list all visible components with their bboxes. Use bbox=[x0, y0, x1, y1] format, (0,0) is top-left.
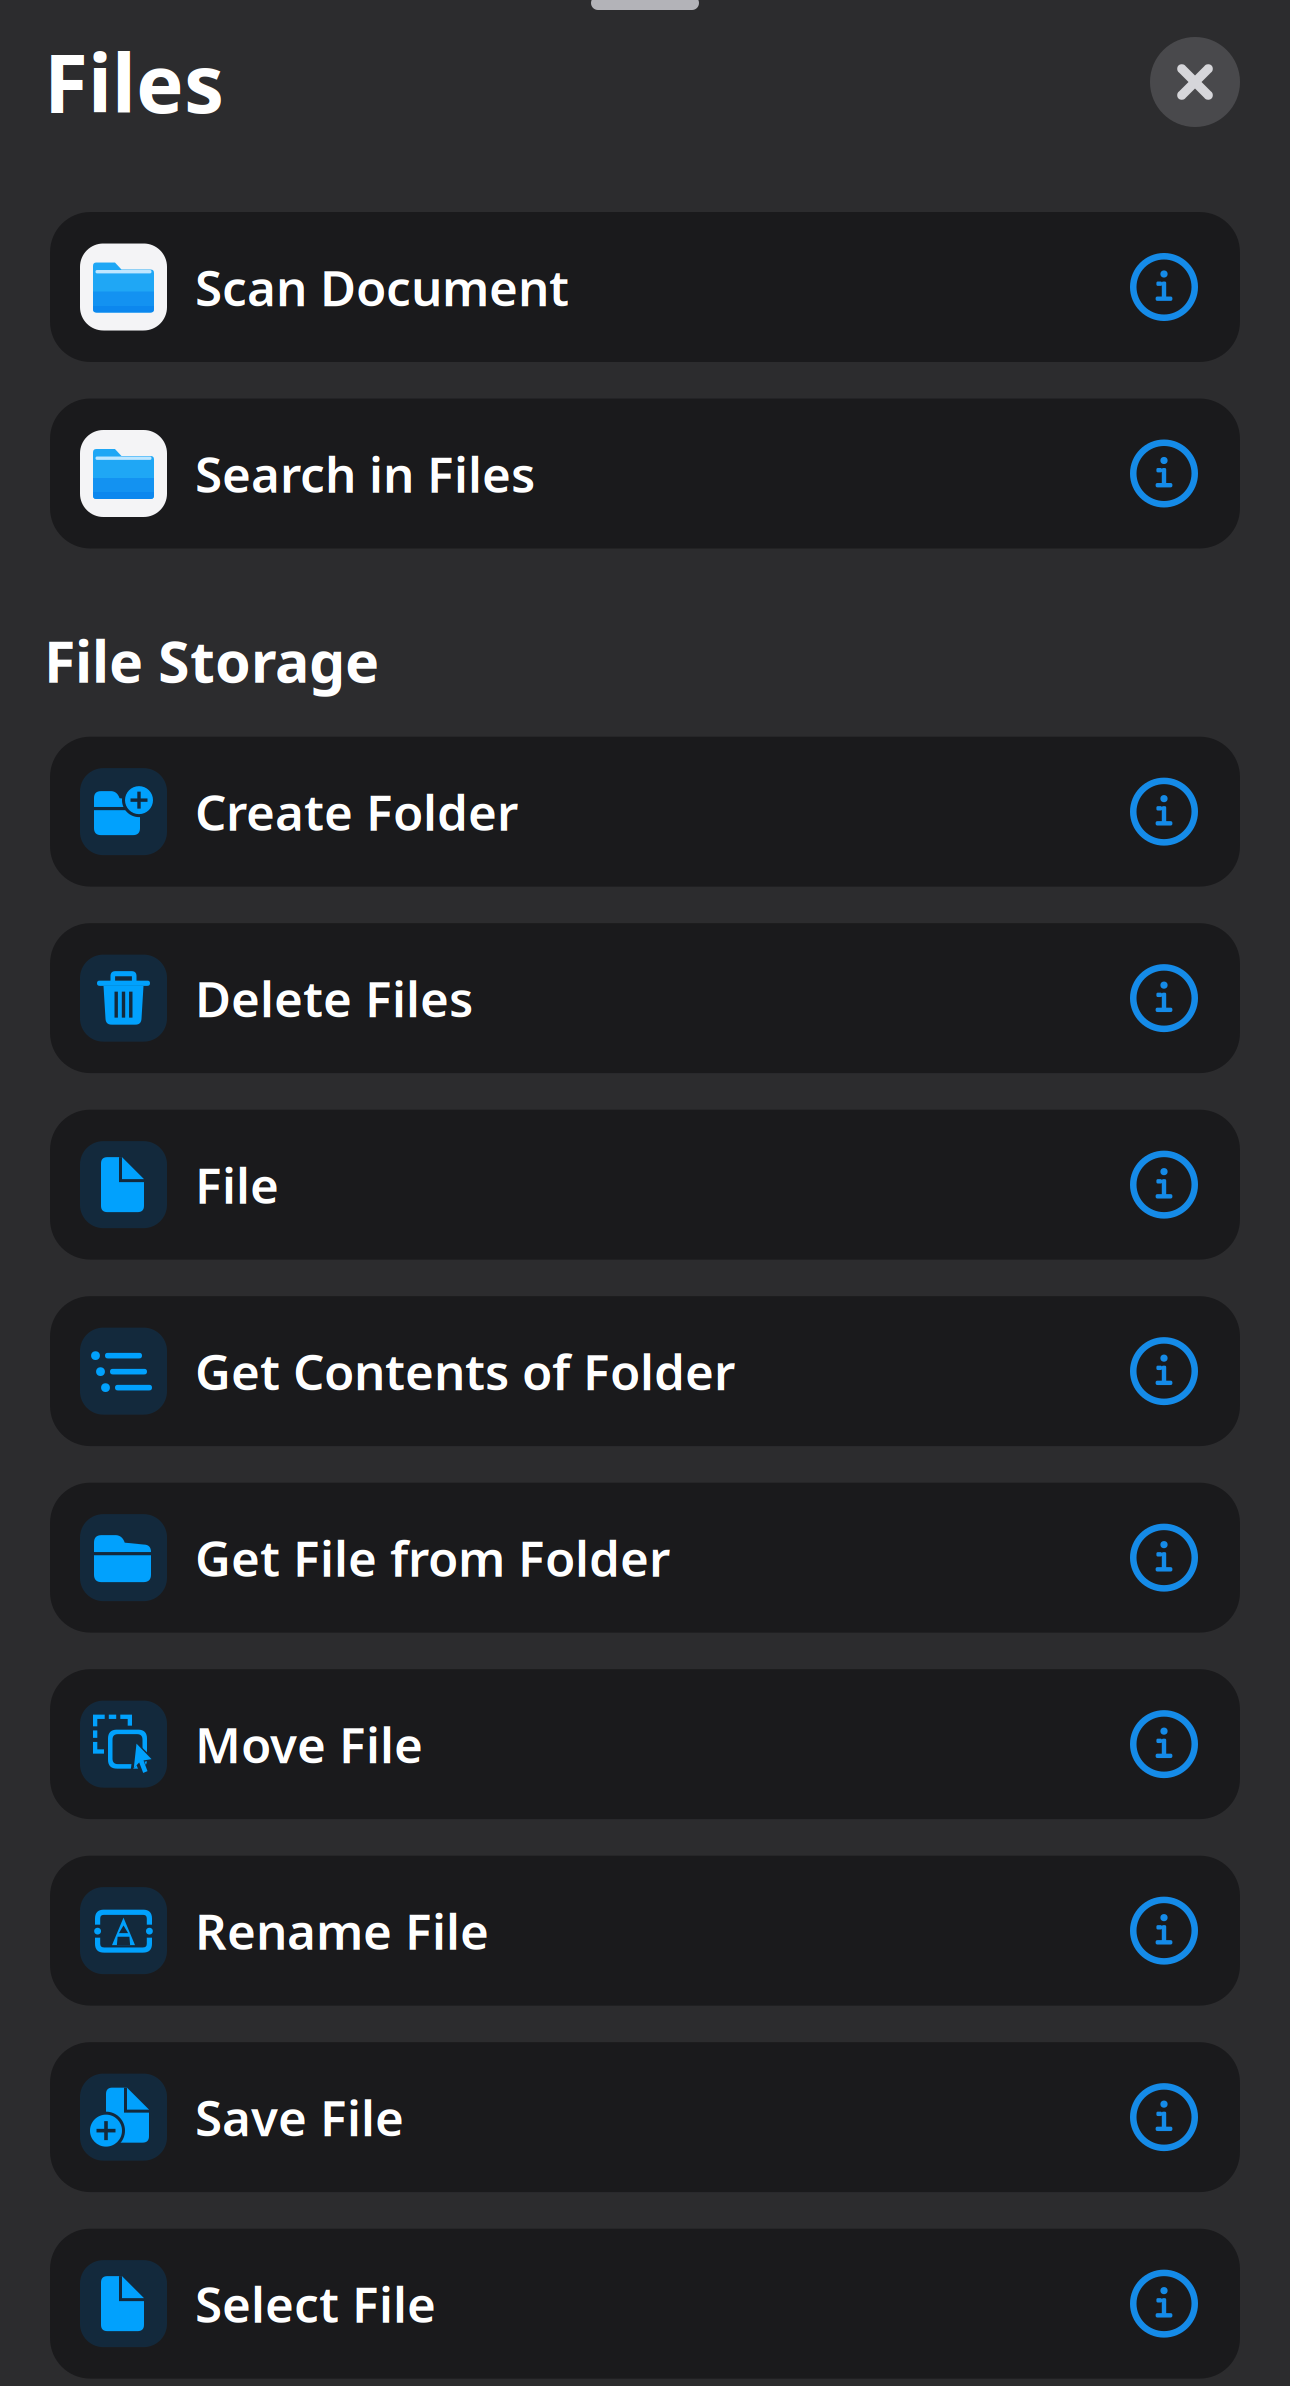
button[interactable]: File bbox=[50, 1110, 1240, 1260]
staticText: Rename File bbox=[195, 1898, 489, 1963]
staticText: Select File bbox=[195, 2271, 436, 2336]
button[interactable]: Rename File bbox=[50, 1856, 1240, 2006]
staticText: Files bbox=[44, 29, 224, 135]
button[interactable]: More info bbox=[1130, 439, 1198, 507]
button[interactable]: More info bbox=[1130, 1524, 1198, 1592]
button[interactable]: Move File bbox=[50, 1669, 1240, 1819]
button[interactable]: Close bbox=[1150, 37, 1240, 127]
staticText: File Storage bbox=[44, 622, 379, 699]
button[interactable]: Create Folder bbox=[50, 737, 1240, 887]
button[interactable]: More info bbox=[1130, 778, 1198, 846]
button[interactable]: More info bbox=[1130, 1337, 1198, 1405]
button[interactable]: Delete Files bbox=[50, 923, 1240, 1073]
staticText: Get Contents of Folder bbox=[195, 1338, 735, 1404]
staticText: Search in Files bbox=[195, 441, 535, 506]
button[interactable]: Scan Document bbox=[50, 212, 1240, 362]
button[interactable]: More info bbox=[1130, 2083, 1198, 2151]
staticText: Save File bbox=[195, 2084, 404, 2150]
button[interactable]: Save File bbox=[50, 2042, 1240, 2192]
staticText: Get File from Folder bbox=[195, 1525, 670, 1590]
staticText: Move File bbox=[195, 1711, 423, 1777]
button[interactable]: Select File bbox=[50, 2229, 1240, 2379]
button[interactable]: Get Contents of Folder bbox=[50, 1296, 1240, 1446]
button[interactable]: More info bbox=[1130, 1897, 1198, 1965]
staticText: Create Folder bbox=[195, 779, 518, 844]
button[interactable]: More info bbox=[1130, 1151, 1198, 1219]
staticText: Delete Files bbox=[195, 965, 473, 1031]
staticText: File bbox=[195, 1152, 279, 1217]
staticText: Scan Document bbox=[195, 254, 569, 320]
button[interactable]: Search in Files bbox=[50, 398, 1240, 548]
button[interactable]: More info bbox=[1130, 253, 1198, 321]
button[interactable]: More info bbox=[1130, 1710, 1198, 1778]
button[interactable]: More info bbox=[1130, 964, 1198, 1032]
button[interactable]: More info bbox=[1130, 2270, 1198, 2338]
button[interactable]: Get File from Folder bbox=[50, 1483, 1240, 1633]
